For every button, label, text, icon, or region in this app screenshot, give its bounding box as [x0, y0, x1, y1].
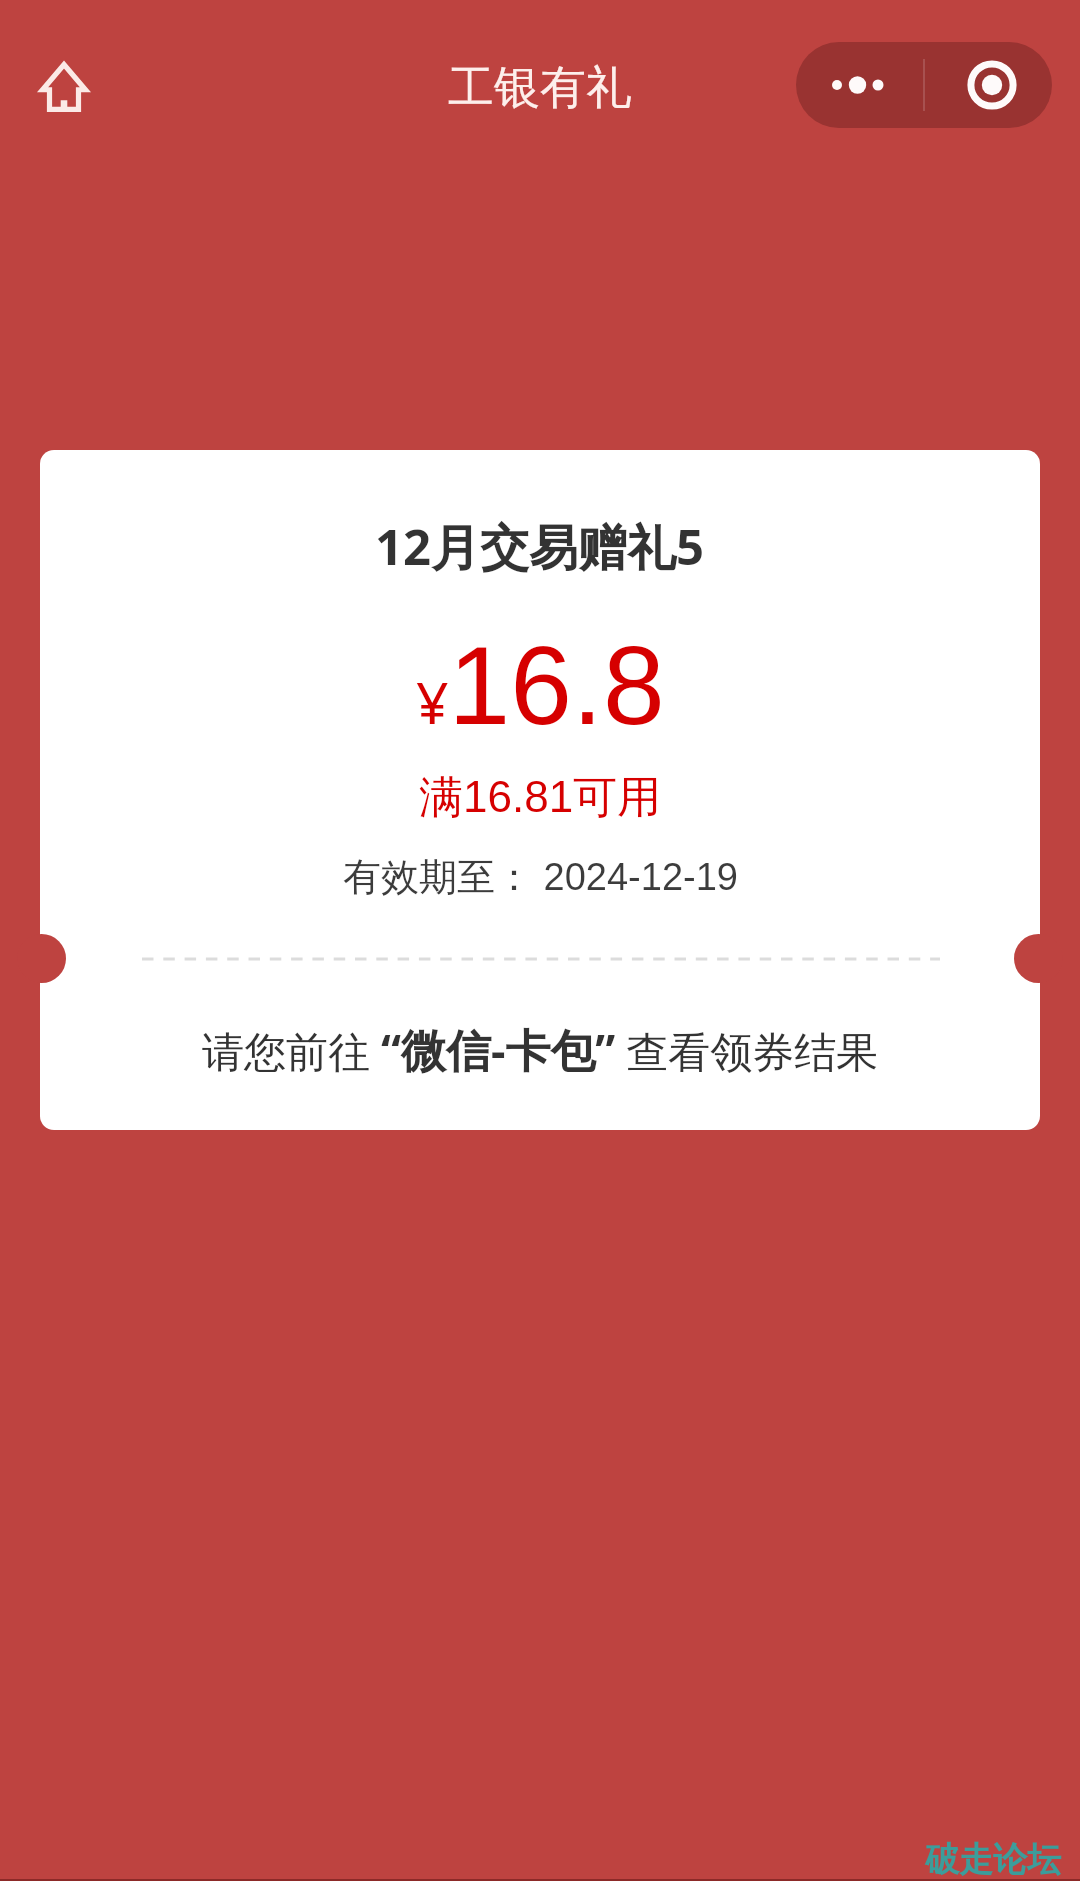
- staticText: 12月交易赠礼5: [375, 513, 705, 580]
- button[interactable]: 12月交易赠礼5: [40, 450, 1040, 1130]
- button[interactable]: More options: [796, 42, 923, 128]
- staticText: 有效期至： 2024-12-19: [343, 853, 738, 901]
- staticText: 破走论坛: [925, 1838, 1061, 1881]
- staticText: 请您前往 “微信-卡包” 查看领券结果: [202, 1019, 879, 1080]
- button[interactable]: Home: [26, 49, 102, 125]
- staticText: ¥16.8: [416, 624, 665, 748]
- staticText: 满16.81可用: [419, 770, 662, 825]
- staticText: 工银有礼: [448, 59, 632, 117]
- button[interactable]: Close mini program: [923, 42, 1052, 128]
